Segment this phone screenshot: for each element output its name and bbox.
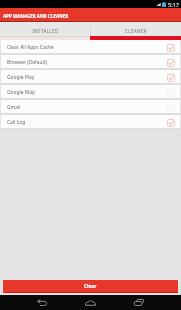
button[interactable]: Call Log [1, 115, 180, 128]
button[interactable]: Home [78, 295, 102, 310]
button[interactable]: CLEANER [90, 22, 181, 40]
staticText: Call Log [7, 119, 167, 126]
staticText: INSTALLED [32, 28, 59, 34]
button[interactable]: Google Play [1, 70, 180, 83]
staticText: 5:17 [168, 1, 179, 8]
staticText: Google Map [7, 89, 167, 96]
button[interactable]: Gmail [1, 100, 180, 113]
staticText: Google Play [7, 74, 167, 81]
button[interactable]: Browser (Default) [1, 55, 180, 68]
staticText: Clear All Apps Cache [7, 44, 167, 51]
button[interactable]: Clear All Apps Cache [1, 40, 180, 53]
button[interactable]: Google Map [1, 85, 180, 98]
staticText: Clear [84, 283, 97, 290]
button[interactable]: INSTALLED [0, 22, 90, 40]
staticText: Gmail [7, 104, 167, 111]
staticText: CLEANER [125, 28, 147, 34]
staticText: APP MANAGER AND CLEANER [3, 13, 69, 19]
button[interactable]: Back [30, 295, 54, 310]
button[interactable]: Recent apps [127, 295, 151, 310]
button[interactable]: Clear [3, 280, 178, 293]
staticText: Browser (Default) [7, 59, 167, 66]
